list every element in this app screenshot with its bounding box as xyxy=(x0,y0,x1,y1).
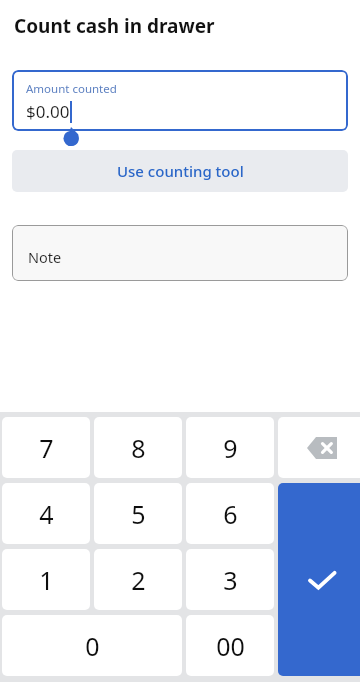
staticText: Count cash in drawer xyxy=(14,13,215,39)
button[interactable]: 3 xyxy=(186,549,274,610)
staticText: 7 xyxy=(39,431,54,465)
button[interactable]: 5 xyxy=(94,483,182,544)
button[interactable]: 7 xyxy=(2,417,90,478)
staticText: Use counting tool xyxy=(117,161,244,181)
staticText: 4 xyxy=(39,497,54,531)
staticText: $0.00 xyxy=(26,100,70,123)
staticText: 6 xyxy=(223,497,238,531)
button[interactable]: Backspace xyxy=(278,417,360,478)
button[interactable]: Amount counted xyxy=(12,70,348,131)
staticText: Amount counted xyxy=(26,81,117,97)
button[interactable]: 6 xyxy=(186,483,274,544)
staticText: 2 xyxy=(131,563,146,597)
staticText: Note xyxy=(28,247,62,267)
button[interactable]: 9 xyxy=(186,417,274,478)
button[interactable]: 2 xyxy=(94,549,182,610)
staticText: 8 xyxy=(131,431,146,465)
button[interactable]: 0 xyxy=(2,615,182,676)
button[interactable]: 1 xyxy=(2,549,90,610)
staticText: 5 xyxy=(131,497,146,531)
button[interactable]: 4 xyxy=(2,483,90,544)
staticText: 00 xyxy=(216,629,245,663)
button[interactable]: Note xyxy=(12,225,348,281)
button[interactable]: Use counting tool xyxy=(12,150,348,192)
button[interactable]: 8 xyxy=(94,417,182,478)
staticText: 3 xyxy=(223,563,238,597)
staticText: 1 xyxy=(39,563,54,597)
button[interactable]: Confirm xyxy=(278,483,360,676)
staticText: 0 xyxy=(85,629,100,663)
staticText: 9 xyxy=(223,431,238,465)
button[interactable]: 00 xyxy=(186,615,274,676)
